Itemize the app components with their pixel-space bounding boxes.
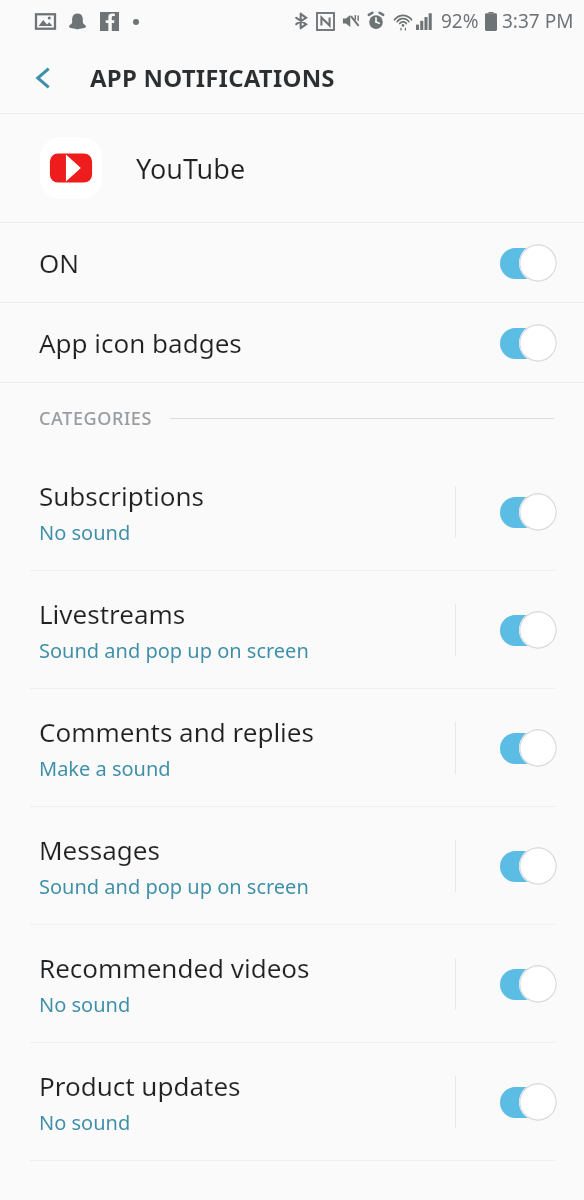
button[interactable]: Toggle on: [500, 323, 558, 363]
button[interactable]: Comments and replies: [0, 689, 584, 806]
button[interactable]: App icon badges: [0, 303, 584, 382]
button[interactable]: Product updates: [0, 1043, 584, 1160]
staticText: Messages: [39, 832, 160, 867]
staticText: App icon badges: [39, 325, 242, 360]
staticText: 92%: [441, 8, 479, 34]
button[interactable]: Toggle on: [500, 243, 558, 283]
staticText: CATEGORIES: [39, 406, 152, 431]
staticText: ON: [39, 245, 80, 280]
button[interactable]: Toggle on: [500, 846, 558, 886]
staticText: No sound: [39, 1109, 131, 1136]
staticText: Livestreams: [39, 596, 186, 631]
staticText: APP NOTIFICATIONS: [90, 61, 335, 94]
staticText: No sound: [39, 991, 131, 1018]
button[interactable]: Livestreams: [0, 571, 584, 688]
button[interactable]: Toggle on: [500, 964, 558, 1004]
staticText: Sound and pop up on screen: [39, 873, 309, 900]
button[interactable]: Toggle on: [500, 492, 558, 532]
staticText: Recommended videos: [39, 950, 310, 985]
button[interactable]: Recommended videos: [0, 925, 584, 1042]
staticText: Make a sound: [39, 755, 171, 782]
button[interactable]: Back: [18, 52, 70, 104]
button[interactable]: Subscriptions: [0, 453, 584, 570]
staticText: Product updates: [39, 1068, 241, 1103]
button[interactable]: Toggle on: [500, 610, 558, 650]
button[interactable]: Messages: [0, 807, 584, 924]
button[interactable]: Toggle on: [500, 728, 558, 768]
staticText: Sound and pop up on screen: [39, 637, 309, 664]
staticText: No sound: [39, 519, 131, 546]
button[interactable]: YouTube: [0, 114, 584, 222]
staticText: Comments and replies: [39, 714, 314, 749]
button[interactable]: Toggle on: [500, 1082, 558, 1122]
button[interactable]: ON: [0, 223, 584, 302]
staticText: Subscriptions: [39, 478, 205, 513]
staticText: 3:37 PM: [502, 8, 574, 34]
staticText: YouTube: [136, 150, 246, 187]
